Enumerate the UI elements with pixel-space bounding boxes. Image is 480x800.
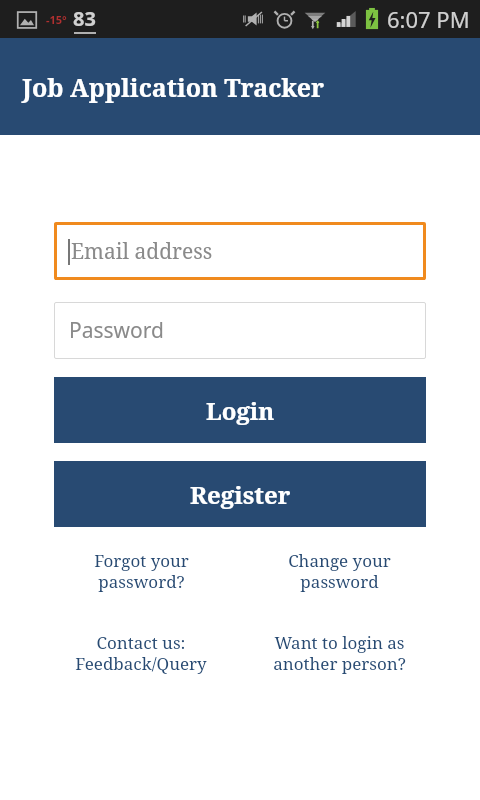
staticText: Email address <box>71 237 213 266</box>
staticText: Forgot your password? <box>94 549 189 593</box>
staticText: 6:07 PM <box>387 4 470 34</box>
button[interactable]: Want to login as another person? <box>240 629 438 677</box>
button[interactable]: Login <box>54 377 426 443</box>
staticText: Register <box>190 478 291 511</box>
staticText: Job Application Tracker <box>22 70 325 104</box>
button[interactable]: Email address <box>54 222 426 280</box>
staticText: Want to login as another person? <box>273 631 406 675</box>
button[interactable]: Contact us: Feedback/Query <box>42 629 240 677</box>
staticText: Login <box>206 394 275 427</box>
staticText: -15° <box>46 12 67 27</box>
button[interactable]: Register <box>54 461 426 527</box>
staticText: Contact us: Feedback/Query <box>75 631 207 675</box>
staticText: Change your password <box>288 549 391 593</box>
button[interactable]: Change your password <box>240 547 438 595</box>
staticText: Password <box>69 316 164 345</box>
staticText: 83 <box>73 5 96 32</box>
button[interactable]: Password <box>54 302 426 359</box>
button[interactable]: Forgot your password? <box>42 547 240 595</box>
